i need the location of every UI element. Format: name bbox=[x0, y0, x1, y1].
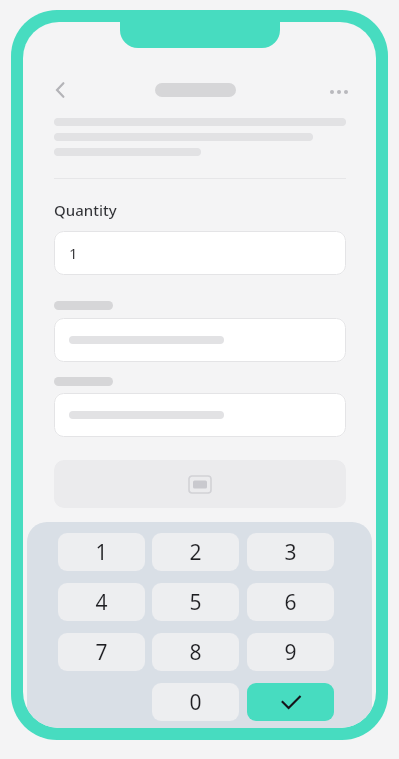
button[interactable] bbox=[54, 318, 346, 362]
button[interactable]: 4 bbox=[58, 583, 145, 621]
staticText: 0 bbox=[189, 688, 202, 717]
button[interactable]: 5 bbox=[152, 583, 239, 621]
button[interactable]: 3 bbox=[247, 533, 334, 571]
staticText: 1 bbox=[69, 243, 78, 263]
button[interactable]: 7 bbox=[58, 633, 145, 671]
button[interactable]: Confirm bbox=[247, 683, 334, 721]
button[interactable]: More options bbox=[321, 74, 357, 110]
button[interactable]: 8 bbox=[152, 633, 239, 671]
staticText: 9 bbox=[284, 638, 297, 667]
button[interactable]: Back bbox=[43, 72, 79, 108]
staticText: 5 bbox=[189, 588, 202, 617]
button[interactable] bbox=[54, 393, 346, 437]
button[interactable]: 1 bbox=[58, 533, 145, 571]
button[interactable]: 2 bbox=[152, 533, 239, 571]
staticText: 2 bbox=[189, 538, 202, 567]
button[interactable]: 6 bbox=[247, 583, 334, 621]
button[interactable]: 1 bbox=[54, 231, 346, 275]
button[interactable]: 9 bbox=[247, 633, 334, 671]
staticText: 6 bbox=[284, 588, 297, 617]
staticText: 3 bbox=[284, 538, 297, 567]
button[interactable]: 0 bbox=[152, 683, 239, 721]
staticText: Quantity bbox=[54, 200, 117, 220]
staticText: 4 bbox=[95, 588, 108, 617]
button[interactable]: Card payment bbox=[54, 460, 346, 508]
staticText: 1 bbox=[95, 538, 108, 567]
staticText: 7 bbox=[95, 638, 108, 667]
staticText: 8 bbox=[189, 638, 202, 667]
